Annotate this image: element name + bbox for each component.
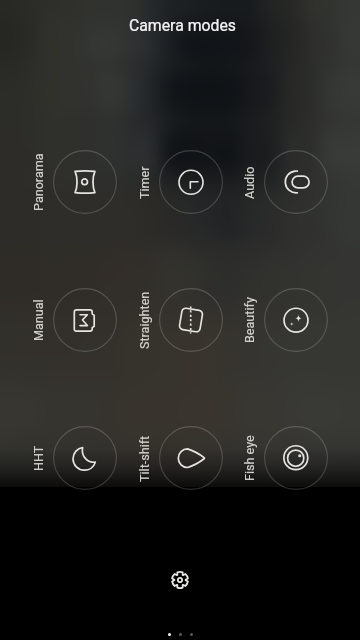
staticText: Camera modes <box>129 16 236 35</box>
staticText: Manual <box>31 299 46 341</box>
button[interactable]: Settings <box>160 560 200 600</box>
staticText: HHT <box>31 445 46 471</box>
staticText: Fish eye <box>242 435 257 481</box>
button[interactable]: Audio <box>237 150 328 214</box>
button[interactable]: Fish eye <box>237 426 328 490</box>
button[interactable]: Beautify <box>237 288 328 352</box>
staticText: Timer <box>137 166 152 199</box>
button[interactable]: HHT <box>26 426 117 490</box>
staticText: Tilt-shift <box>137 435 152 482</box>
staticText: Straighten <box>137 291 152 349</box>
button[interactable]: Timer <box>132 150 223 214</box>
button[interactable]: Manual <box>26 288 117 352</box>
staticText: Panorama <box>31 153 46 211</box>
button[interactable]: Panorama <box>26 150 117 214</box>
staticText: Audio <box>242 166 257 199</box>
staticText: Beautify <box>242 297 257 343</box>
button[interactable]: Straighten <box>132 288 223 352</box>
button[interactable]: Tilt-shift <box>132 426 223 490</box>
